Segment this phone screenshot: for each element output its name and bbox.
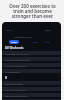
staticText: Barbell Bench Pres: [5, 94, 28, 97]
staticText: REPS: [45, 28, 51, 31]
button[interactable]: Band Assisted Pull: [2, 87, 61, 91]
staticText: Over 200 exercises to train and become s…: [9, 3, 56, 19]
button[interactable]: Assisted Dip: [2, 69, 61, 73]
staticText: Alternating 180 Jum: [5, 52, 29, 55]
button[interactable]: Alternating 180 Jum: [2, 51, 61, 55]
staticText: Band Assisted Pull: [5, 88, 27, 91]
staticText: Log: [45, 40, 50, 43]
staticText: Back Extension: [5, 82, 23, 85]
staticText: START: [11, 41, 17, 44]
staticText: Alternating Hammer: [5, 58, 30, 61]
staticText: Assisted Dip: [5, 70, 20, 73]
staticText: B: [5, 76, 7, 80]
button[interactable]: Back Extension: [2, 81, 61, 85]
button[interactable]: Alternating Hammer: [2, 57, 61, 61]
button[interactable]: Arch Lunge Rocket: [2, 63, 61, 67]
button[interactable]: START: [9, 40, 19, 44]
button[interactable]: Barbell Bench Pres: [2, 93, 61, 97]
staticText: All Workouts: [5, 46, 24, 50]
staticText: Dumbbell Press: [14, 35, 32, 38]
staticText: SETS: [6, 28, 12, 31]
staticText: Arch Lunge Rocket: [5, 64, 27, 67]
staticText: Edit: [33, 40, 38, 43]
